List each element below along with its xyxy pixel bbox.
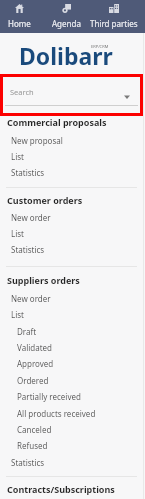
other: Open search options: [124, 95, 130, 99]
button[interactable]: [44, 0, 90, 33]
button[interactable]: All products received: [0, 405, 143, 421]
staticText: Dolibarr: [19, 40, 113, 71]
staticText: Approved: [17, 358, 54, 369]
button[interactable]: Contracts/Subscriptions: [0, 480, 143, 496]
staticText: Statistics: [11, 457, 45, 468]
staticText: Canceled: [17, 424, 52, 435]
staticText: Statistics: [11, 244, 45, 255]
other: Third parties: [109, 4, 119, 13]
staticText: New order: [11, 212, 51, 223]
staticText: Draft: [17, 326, 37, 337]
button[interactable]: New proposal: [0, 132, 143, 148]
button[interactable]: Statistics: [0, 241, 143, 257]
staticText: Home: [8, 18, 31, 29]
button[interactable]: Approved: [0, 355, 143, 371]
button[interactable]: Canceled: [0, 421, 143, 437]
button[interactable]: Validated: [0, 339, 143, 355]
staticText: Third parties: [90, 18, 138, 29]
staticText: Agenda: [52, 18, 81, 29]
staticText: Partially received: [17, 391, 81, 402]
button[interactable]: Customer orders: [0, 191, 143, 207]
button[interactable]: Suppliers orders: [0, 271, 143, 287]
staticText: Commercial proposals: [7, 116, 107, 128]
staticText: Statistics: [11, 167, 45, 178]
staticText: ERP/CRM: [91, 44, 109, 49]
staticText: All products received: [17, 408, 96, 419]
button[interactable]: [0, 74, 143, 116]
staticText: Search: [10, 87, 34, 97]
button[interactable]: Commercial proposals: [0, 113, 143, 129]
staticText: Ordered: [17, 375, 49, 386]
staticText: Validated: [17, 342, 52, 353]
staticText: List: [11, 309, 24, 320]
button[interactable]: Ordered: [0, 372, 143, 388]
staticText: List: [11, 228, 24, 239]
button[interactable]: List: [0, 306, 143, 322]
button[interactable]: Statistics: [0, 454, 143, 470]
button[interactable]: Statistics: [0, 164, 143, 180]
button[interactable]: Partially received: [0, 388, 143, 404]
button[interactable]: [0, 0, 43, 33]
button[interactable]: Refused: [0, 437, 143, 453]
button[interactable]: [90, 0, 136, 33]
staticText: New order: [11, 293, 51, 304]
button[interactable]: New order: [0, 290, 143, 306]
button[interactable]: New order: [0, 209, 143, 225]
staticText: Refused: [17, 440, 48, 451]
other: Home: [15, 4, 24, 13]
staticText: Contracts/Subscriptions: [7, 483, 115, 495]
other: Agenda: [62, 4, 71, 13]
staticText: Customer orders: [7, 194, 83, 206]
staticText: List: [11, 151, 24, 162]
button[interactable]: Draft: [0, 323, 143, 339]
button[interactable]: List: [0, 148, 143, 164]
staticText: Suppliers orders: [7, 274, 80, 286]
button[interactable]: List: [0, 225, 143, 241]
staticText: New proposal: [11, 135, 63, 146]
